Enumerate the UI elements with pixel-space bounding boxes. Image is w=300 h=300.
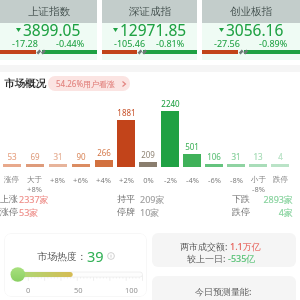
staticText: 市场概况 [4,77,46,90]
staticText: -4% [186,175,199,185]
staticText: 1.1万亿 [230,240,261,252]
staticText: 0% [143,175,154,185]
staticText: 501 [185,141,199,152]
staticText: 深证成指 [129,5,171,18]
staticText: 54.26%用户看涨 [56,78,116,89]
staticText: 53 [7,151,17,162]
staticText: 持平 [117,193,135,204]
button[interactable]: 两市成交额: [152,233,296,267]
staticText: -0.81% [156,37,185,49]
staticText: +2% [119,175,134,185]
button[interactable]: 54.26%用户看涨 [48,76,130,91]
staticText: 2893家 [232,193,293,204]
button[interactable]: 上证指数 [0,0,97,60]
staticText: 2240 [161,98,180,109]
staticText: 涨停 [0,206,18,217]
staticText: 209 [141,149,155,160]
staticText: 较上一日: [187,252,228,264]
staticText: 39 [87,246,104,266]
staticText: 10家 [140,206,160,217]
button[interactable]: 市场热度： [4,233,147,297]
staticText: 1881 [117,107,136,118]
staticText: -8% [252,184,265,194]
button[interactable]: 创业板指 [202,0,300,60]
staticText: 53家 [19,206,39,217]
staticText: 上证指数 [28,5,70,18]
staticText: 100 [125,285,138,295]
staticText: +8% [50,175,65,185]
staticText: 2337家 [19,193,49,204]
staticText: 今日预测量能: [195,285,252,297]
staticText: 大于 [27,175,42,184]
staticText: 13 [253,151,263,162]
staticText: -535亿 [228,252,256,264]
staticText: 266 [97,147,111,158]
staticText: -105.46 [114,37,146,49]
staticText: 50 [74,285,83,295]
staticText: -0.89% [259,37,288,49]
staticText: 小于 [251,175,266,184]
staticText: 4家 [232,206,293,217]
staticText: +4% [96,175,111,185]
staticText: 31 [231,151,241,162]
staticText: 0 [26,285,31,295]
staticText: -8% [230,175,243,185]
staticText: +8% [27,184,42,194]
staticText: 4 [278,151,283,162]
staticText: 106 [207,151,221,162]
staticText: -27.56 [214,37,240,49]
staticText: -2% [164,175,177,185]
staticText: 69 [30,151,40,162]
staticText: 31 [53,151,63,162]
staticText: 上涨 [0,193,18,204]
staticText: 市场热度： [37,250,87,263]
staticText: 90 [76,151,86,162]
staticText: -0.44% [56,37,85,49]
staticText: 209家 [140,193,165,204]
staticText: 两市成交额: [180,240,230,252]
staticText: -6% [208,175,221,185]
button[interactable]: 深证成指 [102,0,197,60]
button[interactable]: 今日预测量能: [152,276,296,300]
staticText: 3899.05 [23,19,81,40]
staticText: 下跌 [232,193,250,204]
staticText: 3056.16 [226,19,284,40]
staticText: 12971.85 [120,19,187,40]
staticText: +6% [73,175,88,185]
staticText: 跌停 [273,175,288,184]
staticText: 停牌 [117,206,135,217]
staticText: 涨停 [4,175,19,184]
staticText: -17.28 [12,37,38,49]
staticText: 创业板指 [230,5,272,18]
staticText: 跌停 [232,206,250,217]
